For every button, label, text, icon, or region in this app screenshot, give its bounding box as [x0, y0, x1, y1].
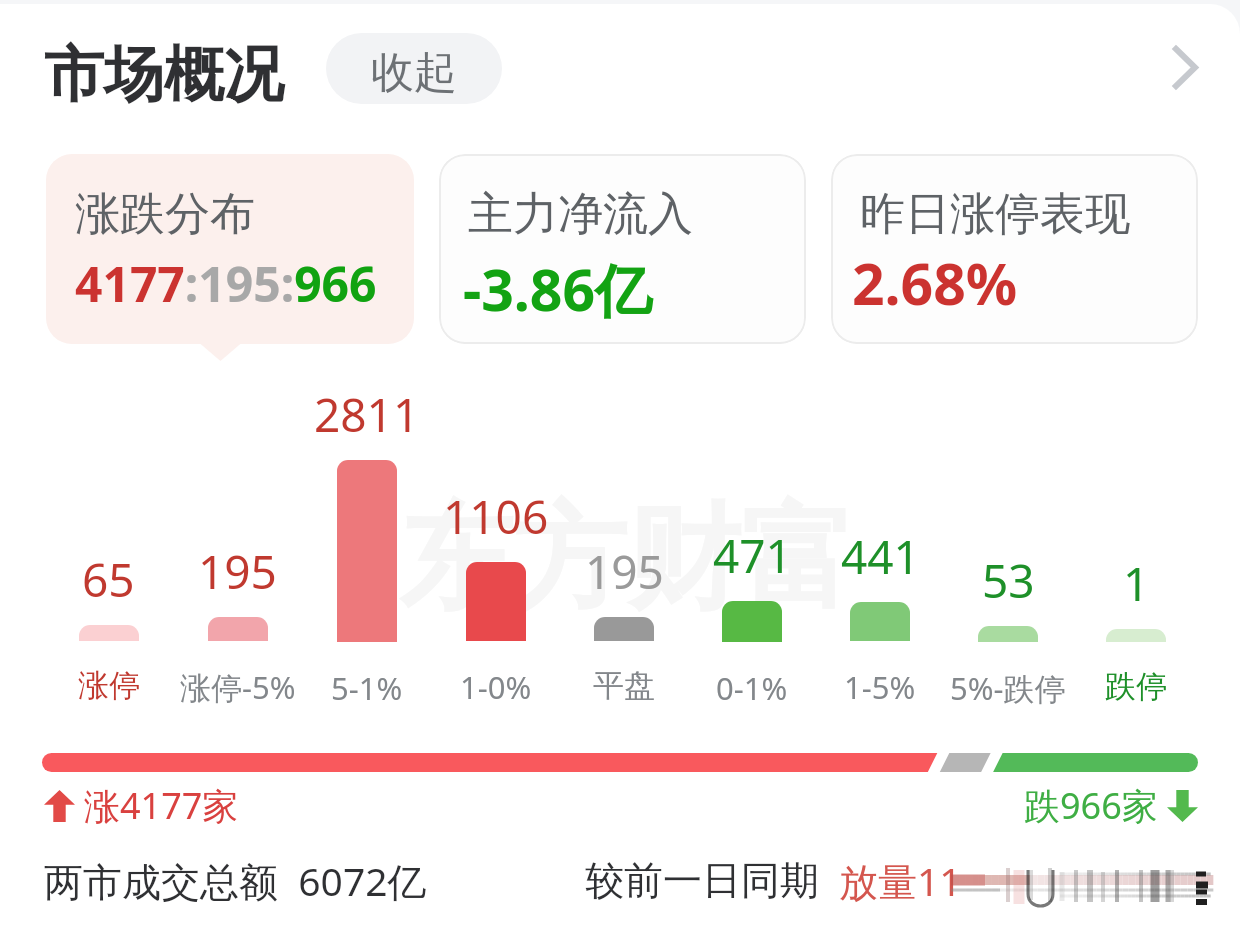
staticText: 放量11 — [839, 854, 962, 907]
button[interactable]: 53 — [944, 0, 1072, 709]
button[interactable]: 195 — [173, 0, 302, 708]
button[interactable]: 2811 — [302, 0, 431, 709]
staticText: 2811 — [314, 383, 420, 446]
staticText: 5%-跌停 — [950, 667, 1066, 709]
staticText: 471 — [713, 524, 792, 587]
staticText: 53 — [982, 549, 1035, 612]
button[interactable]: 涨跌分布 — [46, 154, 414, 344]
staticText: 4177:195:966 — [75, 251, 377, 316]
staticText: 2.68% — [852, 244, 1018, 322]
staticText: 441 — [841, 525, 920, 588]
staticText: -3.86亿 — [463, 250, 653, 328]
button[interactable]: 1 — [1072, 0, 1200, 706]
staticText: 1106 — [443, 485, 549, 548]
button[interactable]: 昨日涨停表现 — [831, 154, 1198, 344]
staticText: 较前一日同期 — [585, 856, 819, 905]
staticText: 涨4177家 — [84, 781, 239, 830]
staticText: 市场概况 — [44, 37, 284, 113]
staticText: 1 — [1123, 552, 1150, 615]
staticText: 5-1% — [331, 667, 403, 709]
staticText: 两市成交总额 6072亿 — [44, 854, 427, 907]
staticText: 涨停-5% — [180, 666, 296, 708]
button[interactable]: 471 — [688, 0, 816, 709]
button[interactable]: 主力净流入 — [439, 154, 806, 344]
staticText: 昨日涨停表现 — [860, 186, 1130, 243]
staticText: 195 — [585, 540, 664, 603]
button[interactable]: 跌966家 — [1024, 781, 1198, 830]
staticText: 跌停 — [1105, 667, 1167, 706]
button[interactable]: 市场概况 — [0, 0, 1240, 150]
staticText: 收起 — [371, 46, 457, 100]
button[interactable]: 441 — [816, 0, 944, 708]
button[interactable]: 1106 — [431, 0, 560, 708]
staticText: 涨停 — [78, 666, 140, 705]
staticText: 跌966家 — [1024, 781, 1158, 830]
button[interactable]: 65 — [44, 0, 173, 705]
staticText: 195 — [198, 540, 277, 603]
staticText: 1-0% — [460, 666, 532, 708]
staticText: 涨跌分布 — [75, 186, 255, 243]
button[interactable]: 查看更多 — [1143, 33, 1227, 117]
button[interactable]: 收起 — [326, 33, 502, 104]
button[interactable]: 195 — [560, 0, 688, 705]
button[interactable]: 涨4177家 — [44, 781, 239, 830]
staticText: 0-1% — [716, 667, 788, 709]
staticText: 东方财富 — [399, 487, 855, 631]
staticText: 65 — [82, 548, 135, 611]
staticText: 主力净流入 — [468, 186, 693, 243]
staticText: 平盘 — [593, 666, 655, 705]
staticText: 1-5% — [844, 666, 916, 708]
